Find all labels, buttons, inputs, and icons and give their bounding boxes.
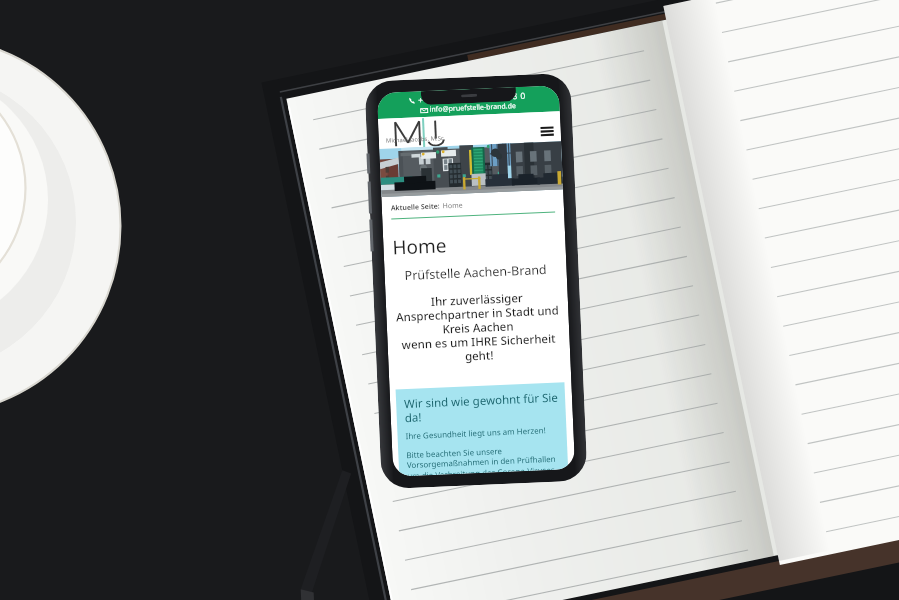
staticText: Ihr zuverlässiger Ansprechpartner in Sta… bbox=[386, 288, 570, 368]
staticText: Home bbox=[392, 232, 448, 260]
staticText: +49 241 9 46 80 bbox=[418, 90, 529, 106]
button[interactable]: Open menu bbox=[536, 120, 557, 141]
staticText: Aktuelle Seite: bbox=[391, 201, 440, 214]
button[interactable]: Wir sind wie gewohnt für Sie da! bbox=[396, 382, 568, 476]
staticText: info@pruefstelle-brand.de bbox=[429, 101, 517, 115]
staticText: Home bbox=[443, 200, 463, 211]
staticText: Prüfstelle Aachen-Brand bbox=[384, 260, 567, 285]
staticText: Bitte beachten Sie unsere Vorsorgemaßnah… bbox=[406, 443, 556, 476]
staticText: Ihre Gesundheit liegt uns am Herzen! bbox=[405, 424, 547, 441]
staticText: Michael Jacobs, M.Sc. bbox=[386, 134, 446, 145]
staticText: Wir sind wie gewohnt für Sie da! bbox=[404, 390, 560, 425]
